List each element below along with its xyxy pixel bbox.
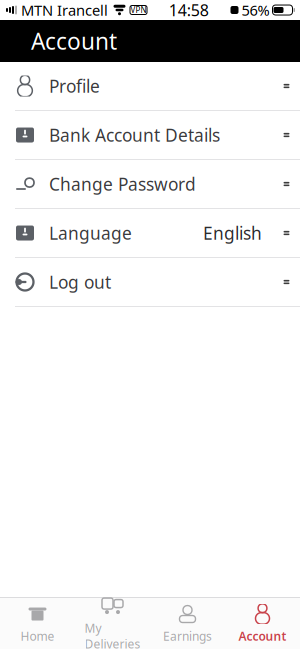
staticText: Home xyxy=(20,628,54,644)
staticText: Language xyxy=(49,221,132,244)
button[interactable]: Profile xyxy=(0,62,300,110)
button[interactable]: Earnings xyxy=(150,598,225,649)
staticText: Account xyxy=(31,26,117,56)
button[interactable]: Log out xyxy=(0,258,300,306)
staticText: 56% xyxy=(241,0,269,20)
button[interactable]: My Deliveries xyxy=(75,598,150,649)
staticText: Bank Account Details xyxy=(49,123,220,146)
staticText: Change Password xyxy=(49,172,196,195)
button[interactable]: Bank Account Details xyxy=(0,111,300,159)
button[interactable]: Home xyxy=(0,598,75,649)
staticText: VPN xyxy=(130,5,146,15)
staticText: MTN Irancell xyxy=(21,0,108,20)
button[interactable]: Change Password xyxy=(0,160,300,208)
staticText: English xyxy=(203,221,262,244)
button[interactable]: Language xyxy=(0,209,300,257)
staticText: Account xyxy=(238,628,286,644)
staticText: Log out xyxy=(49,270,111,293)
button[interactable]: Account xyxy=(225,598,300,649)
staticText: Earnings xyxy=(163,628,212,644)
staticText: Profile xyxy=(49,74,100,97)
staticText: 14:58 xyxy=(169,0,209,21)
staticText: My Deliveries xyxy=(84,620,140,649)
